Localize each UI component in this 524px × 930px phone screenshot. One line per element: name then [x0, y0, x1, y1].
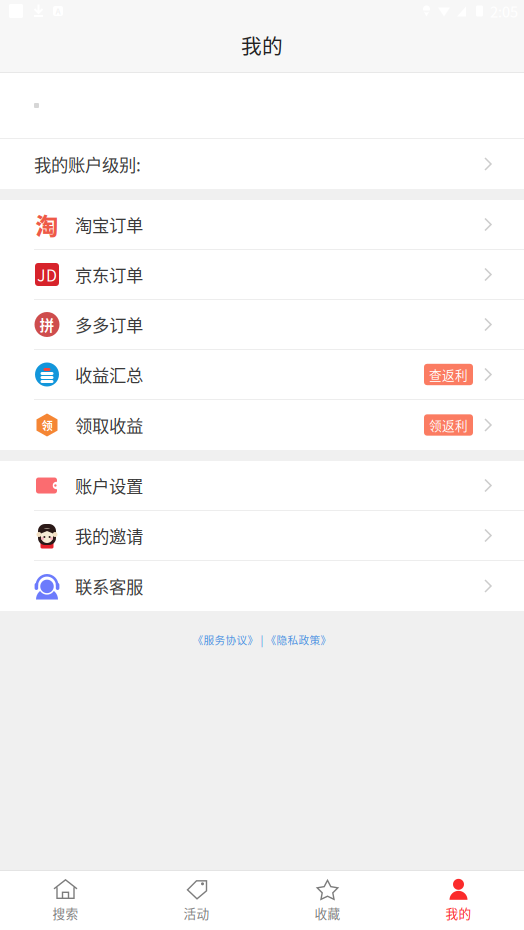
staticText: 我的 [241, 30, 283, 60]
staticText: 收益汇总 [75, 362, 143, 387]
button[interactable]: 领 [0, 400, 524, 450]
button[interactable]: 《服务协议》 [192, 632, 258, 647]
button[interactable]: 《隐私政策》 [265, 632, 331, 647]
staticText: 《服务协议》 [192, 632, 258, 647]
staticText: 我的账户级别: [34, 151, 141, 177]
staticText: 《隐私政策》 [265, 632, 331, 647]
staticText: 收藏 [314, 904, 340, 922]
staticText: 拼 [39, 314, 54, 335]
button[interactable]: JD [0, 250, 524, 300]
staticText: 多多订单 [75, 312, 143, 337]
button[interactable]: 账户设置 [0, 461, 524, 511]
staticText: 活动 [183, 904, 209, 922]
staticText: 京东订单 [75, 262, 143, 287]
button[interactable]: 我的邀请 [0, 511, 524, 561]
staticText: 联系客服 [75, 573, 143, 599]
button[interactable]: 我的账户级别: [0, 139, 524, 189]
button[interactable]: 我的 [393, 871, 524, 930]
staticText: 淘宝订单 [75, 212, 143, 237]
button[interactable]: 活动 [131, 871, 262, 930]
button[interactable]: 收益汇总 [0, 350, 524, 400]
staticText: 我的 [445, 904, 471, 922]
button[interactable]: 淘 [0, 200, 524, 250]
staticText: 我的邀请 [75, 523, 143, 548]
staticText: 查返利 [429, 365, 468, 384]
staticText: 领返利 [429, 416, 468, 434]
staticText: 领取收益 [75, 412, 143, 438]
staticText: 领 [41, 417, 52, 433]
staticText: | [260, 632, 263, 647]
button[interactable]: 联系客服 [0, 561, 524, 611]
staticText: 淘 [35, 208, 58, 241]
button[interactable]: 拼 [0, 300, 524, 350]
staticText: A [55, 5, 60, 17]
staticText: 搜索 [52, 904, 78, 922]
button[interactable]: 收藏 [262, 871, 393, 930]
staticText: 账户设置 [75, 473, 143, 498]
staticText: JD [37, 263, 57, 286]
button[interactable]: 搜索 [0, 871, 131, 930]
